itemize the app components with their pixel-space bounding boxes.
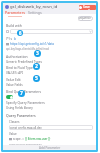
staticText: Value Edit [6, 78, 21, 82]
staticText: Specify Query Parameters [6, 101, 45, 105]
button[interactable]: Parameters [5, 10, 25, 15]
staticText: Authorization [6, 54, 28, 59]
staticText: 3 [36, 50, 39, 57]
staticText: Value Fields [6, 83, 23, 87]
staticText: gsl_diskweb_by_ncsn_id [10, 4, 58, 10]
staticText: Value [9, 132, 17, 136]
button[interactable]: Add Parameter [39, 146, 61, 150]
button[interactable]: Settings [28, 10, 42, 15]
button[interactable]: Step 5 [33, 75, 40, 82]
button[interactable]: Toggle [6, 95, 13, 99]
button[interactable]: const_prefix.map.all.dev [9, 125, 93, 130]
staticText: Query Parameters [6, 113, 36, 118]
staticText: 5 [35, 75, 38, 82]
staticText: scope. = [13, 137, 24, 141]
staticText: Bind Query Parameters [6, 90, 42, 94]
staticText: Generic Predefined Types [6, 60, 42, 64]
staticText: const_prefix.map.all.dev [10, 126, 42, 130]
staticText: Classes [9, 120, 20, 124]
button[interactable]: Step 7 [18, 90, 25, 97]
button[interactable]: Step 2 [33, 63, 40, 70]
staticText: Settings [28, 10, 42, 15]
staticText: api-key/tags.clients/dfs.infini/mod [6, 47, 49, 51]
staticText: {{ $item.row.user }} [25, 137, 51, 141]
staticText: Build with [6, 23, 22, 28]
button[interactable]: Checkbox [6, 30, 9, 33]
staticText: Save config [83, 5, 96, 10]
staticText: 6 [19, 30, 22, 36]
button[interactable]: Step 6 [17, 30, 23, 36]
staticText: Using Fields library [6, 106, 33, 110]
staticText: b [14, 37, 16, 41]
staticText: Add Parameter [39, 146, 61, 150]
staticText: Sequence Edit [78, 16, 93, 21]
staticText: 7 [20, 90, 23, 97]
staticText: VALUES: API [6, 71, 23, 75]
staticText: (*) s [6, 37, 13, 41]
staticText: const.OUTLET.build.build.all [9, 142, 42, 145]
button[interactable]: Save config [79, 5, 96, 10]
button[interactable]: Sequence Edit [78, 16, 93, 21]
staticText: Parameters [5, 10, 25, 15]
staticText: Bind to Fluid Type [6, 66, 33, 70]
staticText: https://api.getconfig.io/v1/data [10, 42, 54, 46]
button[interactable] [10, 29, 93, 34]
button[interactable]: App icon [5, 5, 9, 9]
button[interactable]: Step 3 [34, 50, 41, 57]
staticText: 2 [35, 63, 38, 70]
